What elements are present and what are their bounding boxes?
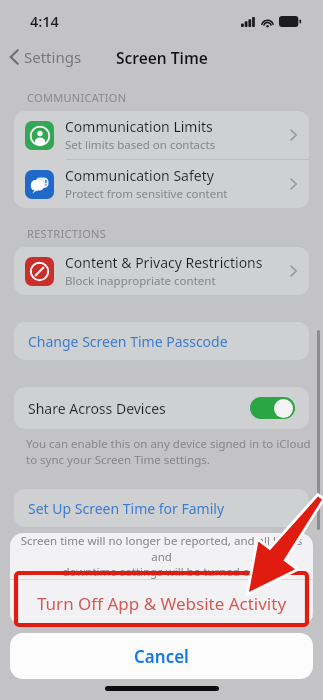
staticText: Screen Time bbox=[116, 47, 208, 68]
staticText: COMMUNICATION bbox=[27, 90, 127, 105]
button[interactable]: Turn Off App & Website Activity bbox=[10, 580, 313, 626]
staticText: Communication Safety bbox=[65, 166, 214, 185]
staticText: Share Across Devices bbox=[28, 399, 250, 418]
button[interactable]: Cancel bbox=[10, 633, 313, 679]
staticText: RESTRICTIONS bbox=[27, 226, 107, 241]
staticText: Protect from sensitive content bbox=[65, 186, 228, 202]
staticText: Screen time will no longer be reported, … bbox=[20, 533, 303, 579]
staticText: You can enable this on any device signed… bbox=[26, 436, 311, 467]
staticText: Cancel bbox=[134, 645, 189, 668]
button[interactable]: Share Across Devices bbox=[14, 387, 309, 429]
button[interactable]: Set Up Screen Time for Family bbox=[14, 489, 309, 527]
other: Share Across Devices toggle, on bbox=[250, 397, 295, 419]
staticText: Turn Off App & Website Activity bbox=[37, 592, 287, 615]
button[interactable]: Change Screen Time Passcode bbox=[14, 322, 309, 360]
staticText: Content & Privacy Restrictions bbox=[65, 253, 263, 272]
staticText: Set limits based on contacts bbox=[65, 137, 216, 153]
button[interactable]: Content & Privacy Restrictions bbox=[14, 247, 309, 295]
staticText: Settings bbox=[24, 47, 82, 67]
staticText: Set Up Screen Time for Family bbox=[28, 499, 225, 518]
staticText: 4:14 bbox=[30, 11, 59, 31]
button[interactable]: Settings bbox=[0, 43, 90, 71]
staticText: Communication Limits bbox=[65, 117, 213, 136]
button[interactable]: Communication Safety bbox=[14, 160, 309, 208]
staticText: Change Screen Time Passcode bbox=[28, 332, 228, 351]
staticText: Block inappropriate content bbox=[65, 273, 216, 289]
button[interactable]: Communication Limits bbox=[14, 111, 309, 160]
